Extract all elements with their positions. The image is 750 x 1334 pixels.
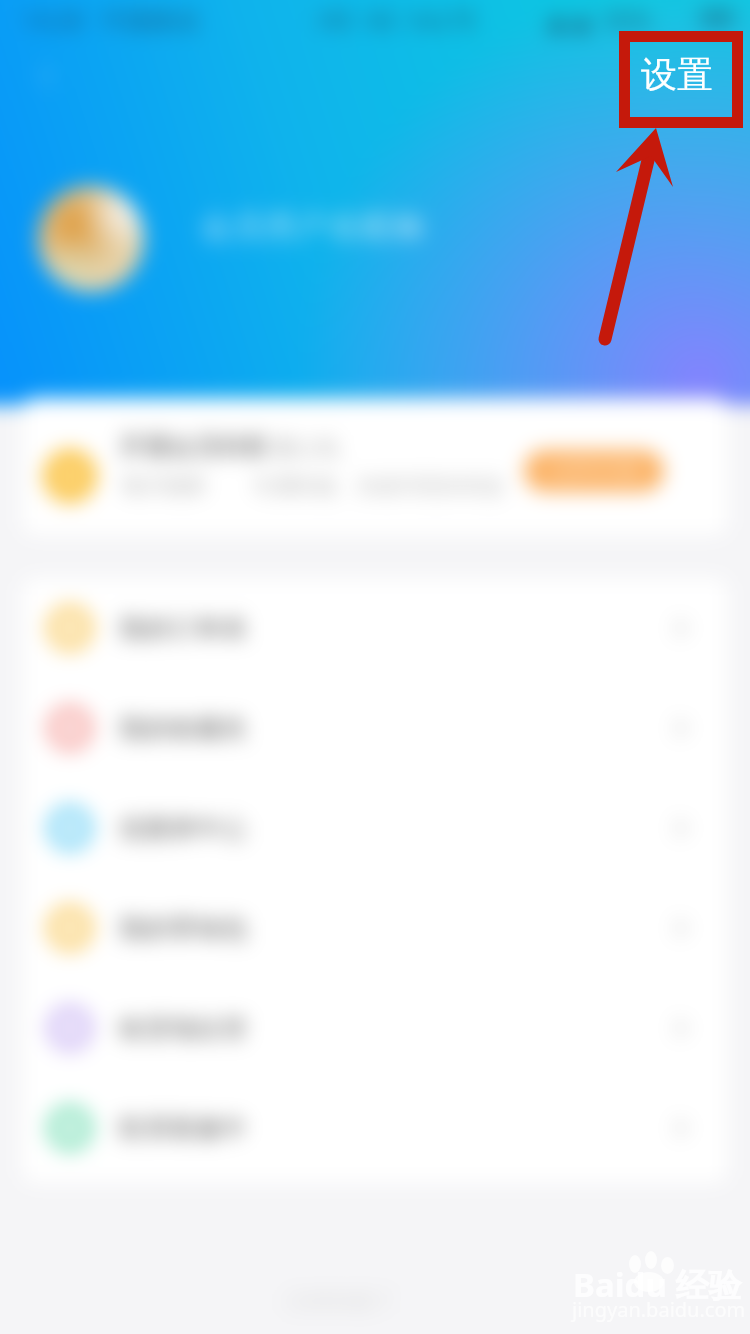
- staticText: HD 4G VoLTE: [318, 3, 477, 36]
- staticText: Baidu 经验: [573, 1262, 742, 1307]
- staticText: ▲ ▲ 90%: [548, 3, 652, 36]
- button[interactable]: 我的零钱包: [22, 878, 728, 978]
- staticText: 会员用户名昵称: [200, 207, 424, 246]
- button[interactable]: 我的收藏夹: [22, 678, 728, 778]
- button[interactable]: 开通会员特权: [22, 398, 728, 535]
- staticText: 立即开通: [550, 457, 638, 485]
- button[interactable]: 立即开通: [524, 450, 664, 492]
- button[interactable]: Profile avatar: [38, 186, 144, 292]
- staticText: 14:28 中国移动: [22, 3, 205, 36]
- staticText: 设置: [641, 52, 713, 97]
- staticText: 我的订单表: [119, 613, 247, 644]
- button[interactable]: 联系客服中: [22, 1078, 728, 1178]
- staticText: 收货地址管: [119, 1013, 247, 1044]
- staticText: 我的零钱包: [119, 913, 247, 944]
- staticText: 专属客服、加速等更多权益: [252, 473, 504, 499]
- button[interactable]: 设置: [641, 52, 713, 97]
- button[interactable]: 收货地址管: [22, 978, 728, 1078]
- button[interactable]: 优惠券中心: [22, 778, 728, 878]
- staticText: 开通会员特权: [119, 431, 269, 462]
- button[interactable]: 我的订单表: [22, 578, 728, 678]
- staticText: 我的收藏夹: [119, 713, 247, 744]
- button[interactable]: 会员用户名昵称: [200, 207, 424, 246]
- staticText: 联系客服中: [119, 1113, 247, 1144]
- other: Account detail: [404, 219, 426, 241]
- staticText: 新人礼: [275, 434, 341, 462]
- staticText: 优惠券中心: [119, 813, 247, 844]
